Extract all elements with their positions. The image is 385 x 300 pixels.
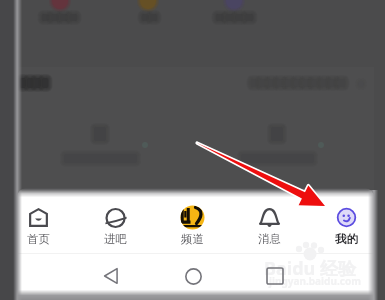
staticText: 我的 xyxy=(335,232,358,246)
staticText: Baidu 经验 xyxy=(264,256,356,281)
button[interactable]: 进吧 xyxy=(77,205,154,253)
button[interactable]: 消息 xyxy=(231,205,308,253)
staticText: 进吧 xyxy=(104,232,127,246)
staticText: 频道 xyxy=(181,232,204,246)
button[interactable]: Home xyxy=(173,256,213,296)
staticText: jingyan.baidu.com xyxy=(269,274,361,288)
staticText: 消息 xyxy=(258,232,281,246)
button[interactable]: Recents xyxy=(255,256,295,296)
button[interactable]: 我的 xyxy=(308,205,385,253)
button[interactable]: Back xyxy=(91,256,131,296)
button[interactable]: 首页 xyxy=(0,205,77,253)
staticText: 首页 xyxy=(27,232,50,246)
button[interactable]: 频道 xyxy=(154,205,231,253)
